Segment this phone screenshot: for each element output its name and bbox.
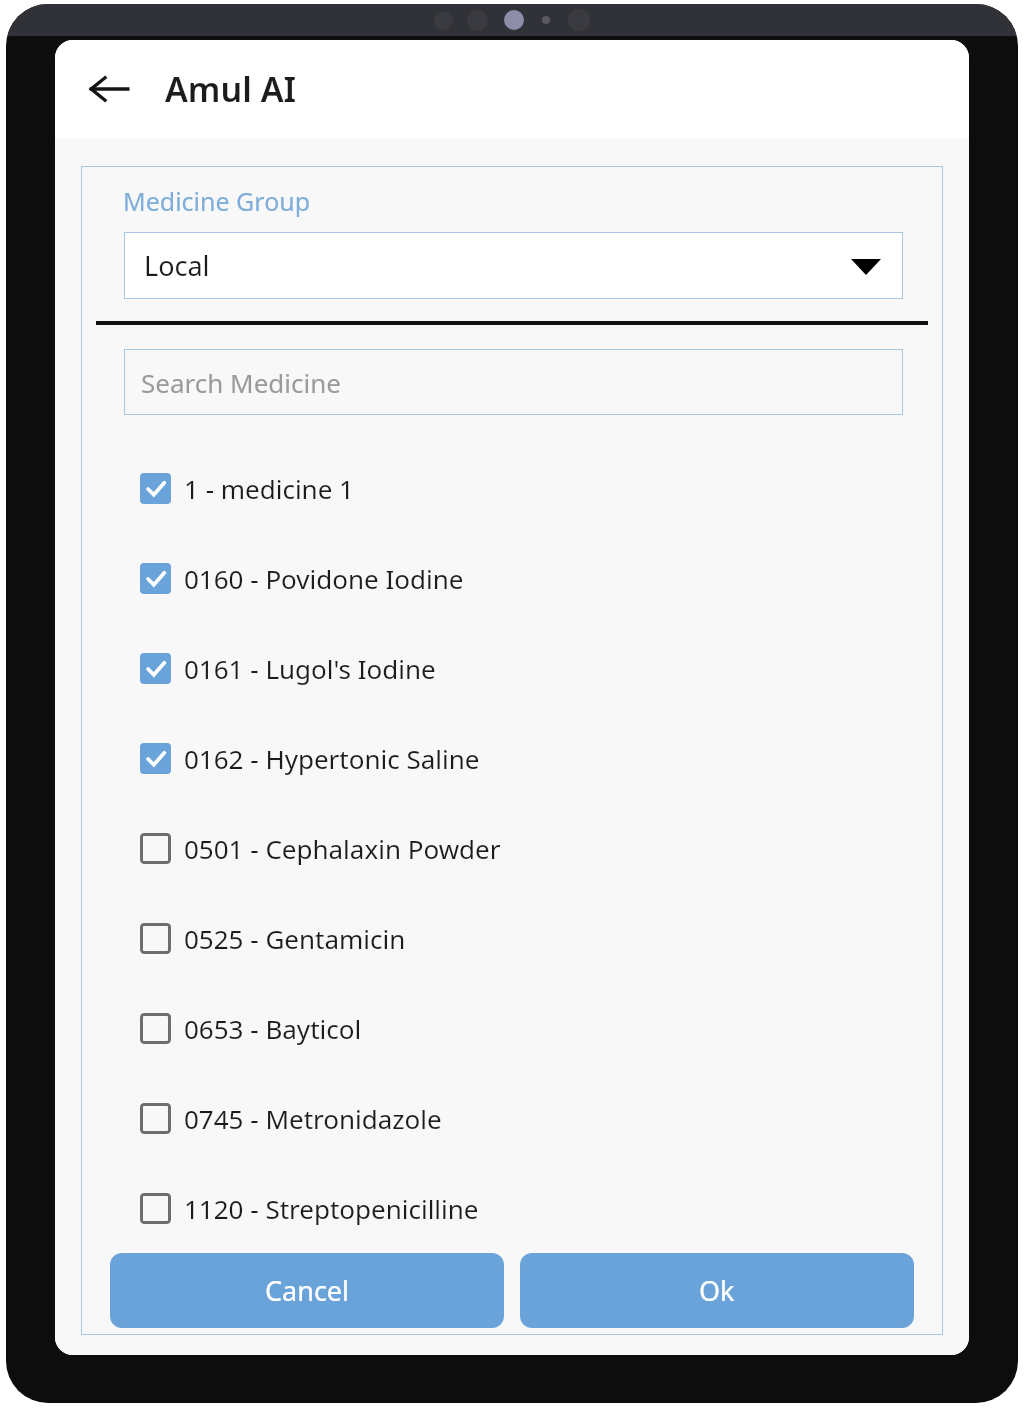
staticText: 0161 - Lugol's Iodine (184, 651, 436, 686)
button[interactable]: 0160 - Povidone Iodine (81, 533, 943, 623)
staticText: Search Medicine (141, 365, 341, 400)
staticText: Ok (699, 1272, 735, 1309)
button[interactable]: Search Medicine (124, 349, 903, 415)
button[interactable]: 1 - medicine 1 (81, 443, 943, 533)
staticText: 1120 - Streptopenicilline (184, 1191, 479, 1226)
staticText: Cancel (265, 1272, 350, 1309)
staticText: 0653 - Bayticol (184, 1011, 362, 1046)
staticText: 0745 - Metronidazole (184, 1101, 442, 1136)
button[interactable]: 0501 - Cephalaxin Powder (81, 803, 943, 893)
staticText: 0525 - Gentamicin (184, 921, 406, 956)
button[interactable]: Cancel (110, 1253, 504, 1328)
staticText: 0162 - Hypertonic Saline (184, 741, 480, 776)
staticText: Local (144, 247, 210, 284)
button[interactable]: Back (81, 61, 137, 117)
button[interactable]: 0162 - Hypertonic Saline (81, 713, 943, 803)
staticText: Amul AI (165, 66, 297, 112)
staticText: 0160 - Povidone Iodine (184, 561, 464, 596)
staticText: 0501 - Cephalaxin Powder (184, 831, 501, 866)
staticText: 1 - medicine 1 (184, 471, 354, 506)
button[interactable]: 0653 - Bayticol (81, 983, 943, 1073)
button[interactable]: 0745 - Metronidazole (81, 1073, 943, 1163)
button[interactable]: Local (124, 232, 903, 299)
staticText: Medicine Group (123, 184, 311, 218)
button[interactable]: 1120 - Streptopenicilline (81, 1163, 943, 1253)
button[interactable]: 0525 - Gentamicin (81, 893, 943, 983)
button[interactable]: Ok (520, 1253, 914, 1328)
button[interactable]: 0161 - Lugol's Iodine (81, 623, 943, 713)
